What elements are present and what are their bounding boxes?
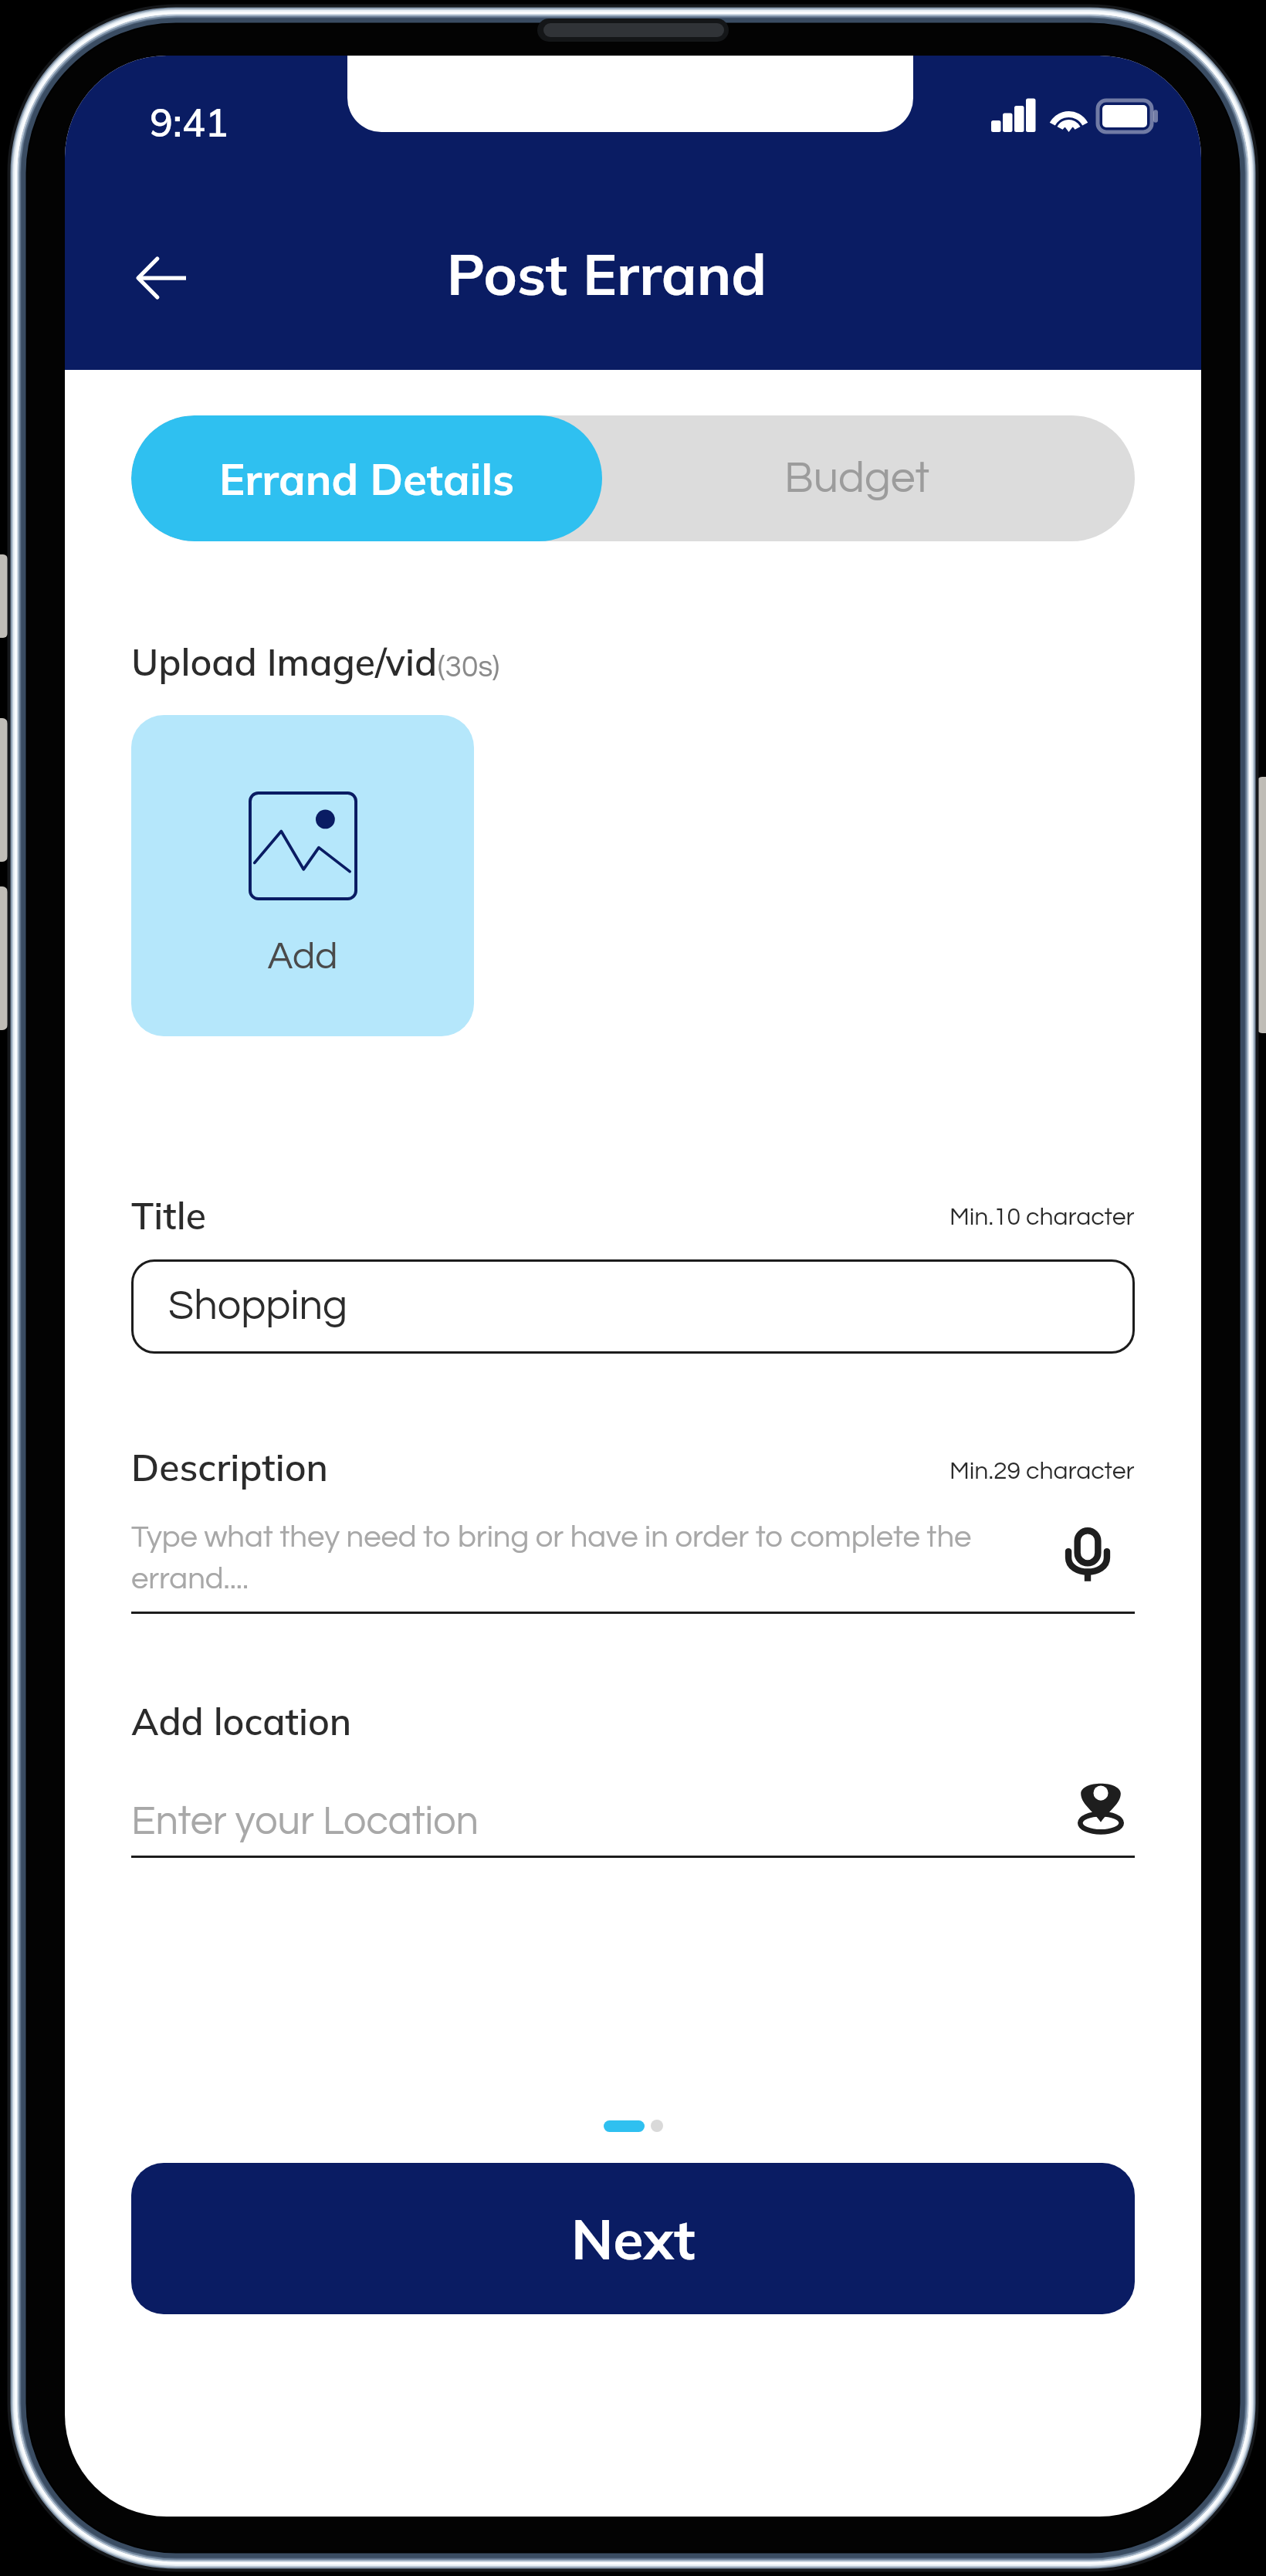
staticText: Title	[131, 1192, 206, 1239]
button[interactable]: Add	[131, 715, 474, 1036]
staticText: Next	[571, 2204, 696, 2273]
staticText: (30s)	[438, 652, 500, 683]
button[interactable]: Budget	[602, 415, 1135, 541]
staticText: Min.29 character	[949, 1459, 1135, 1484]
button[interactable]: Errand Details	[131, 415, 602, 541]
button[interactable]: Pick location	[1058, 1771, 1143, 1839]
button[interactable]: Next	[131, 2163, 1135, 2314]
staticText: Shopping	[168, 1285, 348, 1328]
staticText: Enter your Location	[131, 1801, 479, 1842]
staticText: 9:41	[150, 98, 228, 147]
staticText: Min.10 character	[949, 1205, 1135, 1230]
staticText: Upload Image/vid	[131, 639, 438, 685]
staticText: Add location	[131, 1698, 352, 1744]
staticText: Description	[131, 1444, 329, 1490]
staticText: Post Errand	[65, 238, 1149, 310]
staticText: Errand Details	[219, 452, 515, 506]
staticText: Type what they need to bring or have in …	[131, 1521, 996, 1595]
staticText: Add	[131, 937, 474, 976]
button[interactable]: Voice input	[1045, 1513, 1130, 1598]
staticText: Budget	[784, 456, 930, 501]
button[interactable]: Shopping	[131, 1259, 1135, 1354]
button[interactable]: Back	[116, 232, 208, 324]
